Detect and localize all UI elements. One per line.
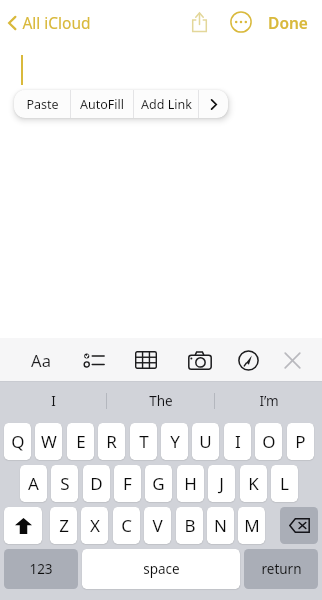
button[interactable]: Paste — [14, 90, 70, 118]
button[interactable]: I — [0, 382, 106, 420]
button[interactable]: V — [144, 507, 171, 544]
button[interactable]: space — [82, 549, 240, 589]
button[interactable]: G — [145, 465, 172, 502]
button[interactable]: Checklist — [75, 338, 113, 382]
staticText: F — [123, 472, 132, 495]
button[interactable]: X — [81, 507, 108, 544]
button[interactable]: Y — [161, 423, 188, 460]
button[interactable]: N — [207, 507, 234, 544]
staticText: A — [28, 472, 39, 495]
button[interactable]: E — [67, 423, 94, 460]
button[interactable]: Camera — [181, 338, 219, 382]
button[interactable]: K — [240, 465, 267, 502]
staticText: J — [219, 472, 224, 495]
button[interactable]: Backspace — [280, 507, 318, 544]
staticText: AutoFill — [80, 96, 124, 113]
staticText: Z — [59, 514, 69, 537]
staticText: Aa — [31, 349, 51, 371]
staticText: All iCloud — [22, 12, 91, 33]
staticText: T — [139, 430, 149, 453]
button[interactable]: Z — [50, 507, 77, 544]
staticText: G — [152, 472, 165, 495]
staticText: space — [143, 560, 180, 578]
staticText: Paste — [26, 96, 59, 113]
button[interactable]: Done — [262, 6, 314, 39]
staticText: W — [41, 430, 57, 453]
staticText: Q — [11, 430, 25, 453]
staticText: I — [235, 430, 241, 453]
button[interactable]: M — [238, 507, 265, 544]
staticText: O — [262, 430, 276, 453]
button[interactable]: R — [98, 423, 125, 460]
button[interactable]: return — [244, 549, 318, 589]
staticText: 123 — [29, 560, 53, 578]
button[interactable]: C — [113, 507, 140, 544]
staticText: I — [51, 392, 56, 410]
button[interactable]: More options — [224, 5, 258, 39]
button[interactable]: I — [224, 423, 251, 460]
staticText: V — [152, 514, 163, 537]
button[interactable]: W — [35, 423, 62, 460]
staticText: E — [76, 430, 86, 453]
staticText: The — [149, 392, 173, 410]
staticText: M — [244, 514, 260, 537]
staticText: return — [261, 560, 302, 578]
staticText: I’m — [259, 392, 279, 410]
button[interactable]: S — [51, 465, 78, 502]
button[interactable]: Add Link — [134, 90, 198, 118]
staticText: Y — [170, 430, 180, 453]
button[interactable]: Text format — [22, 338, 60, 382]
staticText: N — [214, 514, 227, 537]
button[interactable]: More menu items — [199, 90, 228, 118]
staticText: L — [280, 472, 289, 495]
button[interactable]: All iCloud — [6, 12, 91, 33]
button[interactable]: P — [287, 423, 314, 460]
staticText: K — [248, 472, 259, 495]
button[interactable]: T — [130, 423, 157, 460]
staticText: X — [90, 514, 100, 537]
button[interactable]: Shift — [4, 507, 42, 544]
staticText: S — [60, 472, 70, 495]
staticText: H — [184, 472, 197, 495]
button[interactable]: F — [114, 465, 141, 502]
button[interactable]: Dismiss keyboard — [273, 338, 311, 382]
button[interactable]: Markup — [229, 338, 267, 382]
staticText: Add Link — [141, 96, 192, 113]
button[interactable]: J — [208, 465, 235, 502]
staticText: U — [199, 430, 212, 453]
button[interactable]: O — [255, 423, 282, 460]
staticText: Done — [268, 12, 308, 33]
button[interactable]: A — [20, 465, 47, 502]
staticText: P — [295, 430, 306, 453]
staticText: D — [90, 472, 103, 495]
button[interactable]: U — [192, 423, 219, 460]
button[interactable]: D — [83, 465, 110, 502]
button[interactable]: L — [271, 465, 298, 502]
button[interactable]: Q — [4, 423, 31, 460]
button[interactable]: Table — [127, 338, 165, 382]
staticText: C — [121, 514, 132, 537]
staticText: R — [106, 430, 117, 453]
button[interactable]: I’m — [215, 382, 322, 420]
button[interactable]: 123 — [4, 549, 78, 589]
button[interactable]: The — [107, 382, 214, 420]
staticText: B — [184, 514, 196, 537]
button[interactable]: H — [177, 465, 204, 502]
button[interactable]: Share — [182, 5, 216, 39]
button[interactable]: AutoFill — [71, 90, 133, 118]
button[interactable]: B — [176, 507, 203, 544]
